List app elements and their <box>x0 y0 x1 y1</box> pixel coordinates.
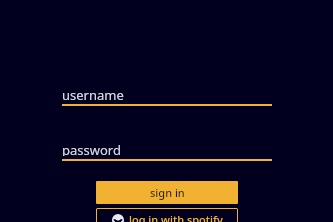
staticText: sign in <box>150 185 185 200</box>
staticText: log in with spotify <box>129 212 223 222</box>
staticText: password <box>62 141 121 156</box>
button[interactable]: Spotify <box>96 208 238 222</box>
button[interactable]: sign in <box>96 181 238 204</box>
button[interactable]: password <box>62 141 272 161</box>
button[interactable]: username <box>62 86 272 106</box>
other: Spotify <box>112 214 124 222</box>
staticText: username <box>62 86 124 101</box>
